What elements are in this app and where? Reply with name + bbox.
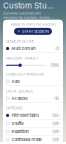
staticText: FORECAST WINDOW	[6, 72, 44, 77]
staticText: Repetition	[11, 129, 28, 134]
button[interactable]: Multi Domain	[3, 45, 63, 53]
staticText: Off	[53, 121, 58, 125]
staticText: Interleave topics	[11, 113, 39, 118]
staticText: Off	[53, 129, 58, 134]
staticText: Ready to start a focused run	[10, 22, 55, 26]
staticText: Shuffle	[11, 121, 23, 126]
button[interactable]: Interleave topics	[3, 112, 63, 120]
staticText: SESSION SCOPE	[6, 39, 34, 43]
staticText: Generate automatically sessions by maste…	[3, 11, 55, 20]
staticText: 70%	[51, 63, 58, 67]
staticText: MASTERY TARGET	[6, 56, 38, 60]
staticText: Multi Domain	[11, 46, 35, 51]
button[interactable]: All decks	[3, 95, 63, 103]
button[interactable]: START SESSION	[14, 28, 52, 35]
staticText: 12	[55, 96, 58, 101]
staticText: Off	[53, 137, 58, 142]
button[interactable]: Continuous mode	[3, 136, 63, 143]
staticText: OPTIONS	[6, 106, 22, 110]
button[interactable]: Repetition	[3, 128, 63, 136]
staticText: 3	[56, 46, 58, 51]
button[interactable]: Shuffle	[3, 120, 63, 128]
staticText: On	[53, 113, 58, 117]
button[interactable]: Auto	[3, 78, 63, 86]
staticText: Continuous mode	[11, 137, 41, 142]
staticText: Custom Study	[3, 1, 55, 10]
staticText: START SESSION	[22, 29, 49, 34]
staticText: All decks	[11, 96, 27, 101]
staticText: DECK SOURCE	[6, 89, 33, 93]
staticText: Auto	[11, 79, 19, 84]
